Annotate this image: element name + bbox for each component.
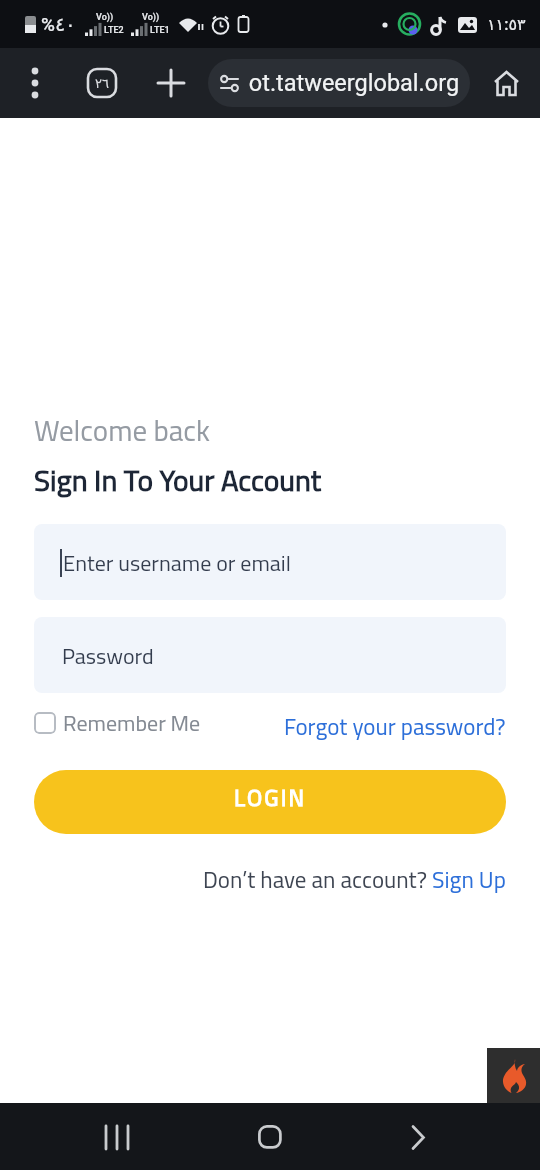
button[interactable]: Remember Me [34,702,201,743]
staticText: Vo)) [142,12,160,23]
button[interactable]: ٢٦ [86,67,118,99]
button[interactable] [396,1115,440,1159]
button[interactable]: LOGIN [34,770,506,834]
staticText: %٤٠ [41,13,76,35]
button[interactable]: ot.tatweerglobal.org [208,59,470,107]
staticText: Enter username or email [63,542,291,583]
staticText: Password [62,635,154,676]
staticText: ot.tatweerglobal.org [244,69,460,97]
staticText: LOGIN [234,776,307,819]
staticText: ٢٦ [95,76,109,91]
button[interactable]: Don’t have an account? Sign Up [203,858,506,901]
button[interactable]: Password [34,617,506,693]
staticText: Remember Me [63,702,201,743]
button[interactable] [16,64,54,102]
staticText: LTE2 [104,25,124,36]
button[interactable] [248,1115,292,1159]
button[interactable] [487,1048,540,1103]
button[interactable] [96,1115,140,1159]
staticText: Vo)) [96,12,114,23]
button[interactable]: Forgot your password? [284,705,506,748]
button[interactable] [152,64,190,102]
staticText: Sign In To Your Account [34,453,322,508]
staticText: ١١:٥٣ [487,15,526,34]
button[interactable]: Enter username or email [34,524,506,600]
button[interactable] [486,63,526,103]
staticText: LTE1 [150,25,170,36]
staticText: Welcome back [34,403,210,457]
